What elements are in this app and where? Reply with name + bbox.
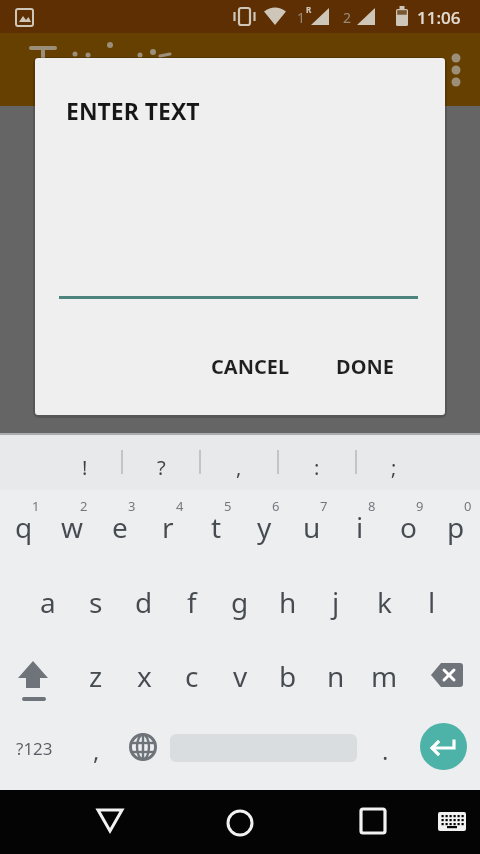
staticText: 1	[297, 8, 306, 27]
staticText: u	[303, 508, 321, 546]
staticText: t	[211, 508, 222, 546]
button[interactable]: n	[312, 639, 360, 713]
button[interactable]: r	[144, 490, 192, 564]
button[interactable]: l	[408, 565, 456, 639]
button[interactable]: w	[48, 490, 96, 564]
staticText: 4	[176, 497, 184, 515]
button[interactable]: z	[72, 639, 120, 713]
button[interactable]: q	[0, 490, 48, 564]
staticText: 3	[128, 497, 136, 515]
button[interactable]: c	[168, 639, 216, 713]
staticText: CANCEL	[211, 353, 290, 380]
staticText: y	[257, 508, 272, 546]
staticText: DONE	[336, 353, 394, 380]
button[interactable]	[420, 723, 467, 770]
staticText: p	[447, 508, 465, 546]
staticText: ,	[236, 454, 242, 481]
staticText: 2	[343, 8, 352, 27]
button[interactable]	[417, 655, 477, 729]
staticText: .	[382, 734, 389, 767]
button[interactable]: ;	[364, 439, 424, 496]
button[interactable]: y	[240, 490, 288, 564]
staticText: :	[314, 454, 320, 481]
button[interactable]: i	[336, 490, 384, 564]
staticText: k	[377, 583, 392, 621]
button[interactable]	[432, 33, 480, 81]
staticText: 7	[320, 497, 328, 515]
button[interactable]: b	[264, 639, 312, 713]
button[interactable]: ,	[209, 439, 269, 496]
button[interactable]: d	[120, 565, 168, 639]
button[interactable]: g	[216, 565, 264, 639]
staticText: z	[89, 657, 103, 695]
button[interactable]: ,	[72, 713, 120, 787]
staticText: ENTER TEXT	[66, 95, 200, 126]
button[interactable]: s	[72, 565, 120, 639]
staticText: r	[162, 508, 174, 546]
button[interactable]: t	[192, 490, 240, 564]
staticText: f	[187, 583, 197, 621]
staticText: a	[40, 583, 56, 621]
button[interactable]	[3, 655, 63, 729]
button[interactable]: h	[264, 565, 312, 639]
button[interactable]: u	[288, 490, 336, 564]
button[interactable]: ?	[131, 439, 191, 496]
staticText: w	[61, 508, 84, 546]
staticText: e	[112, 508, 128, 546]
staticText: c	[185, 657, 199, 695]
staticText: i	[356, 508, 364, 546]
button[interactable]: :	[287, 439, 347, 496]
staticText: h	[279, 583, 297, 621]
staticText: q	[15, 508, 33, 546]
staticText: d	[135, 583, 153, 621]
staticText: v	[233, 657, 248, 695]
button[interactable]: o	[384, 490, 432, 564]
staticText: x	[137, 657, 152, 695]
staticText: ;	[391, 454, 397, 481]
button[interactable]: e	[96, 490, 144, 564]
staticText: j	[332, 583, 340, 621]
staticText: g	[231, 583, 249, 621]
staticText: 8	[368, 497, 376, 515]
staticText: n	[327, 657, 345, 695]
button[interactable]	[84, 790, 136, 854]
button[interactable]: p	[432, 490, 480, 564]
button[interactable]	[426, 790, 478, 854]
staticText: 11:06	[417, 6, 461, 29]
staticText: b	[279, 657, 297, 695]
button[interactable]: !	[55, 439, 115, 496]
button[interactable]: .	[361, 713, 409, 787]
staticText: m	[371, 657, 398, 695]
button[interactable]: m	[360, 639, 408, 713]
button[interactable]	[119, 713, 167, 783]
button[interactable]: x	[120, 639, 168, 713]
staticText: 0	[464, 497, 472, 515]
button[interactable]: DONE	[315, 342, 415, 390]
staticText: l	[428, 583, 436, 621]
staticText: 1	[32, 497, 40, 515]
button[interactable]: j	[312, 565, 360, 639]
staticText: 6	[272, 497, 280, 515]
staticText: ?123	[16, 737, 53, 760]
staticText: ,	[93, 734, 100, 767]
staticText: s	[89, 583, 103, 621]
staticText: 5	[224, 497, 232, 515]
staticText: 9	[416, 497, 424, 515]
button[interactable]: f	[168, 565, 216, 639]
button[interactable]: v	[216, 639, 264, 713]
button[interactable]	[214, 790, 266, 854]
button[interactable]: k	[360, 565, 408, 639]
staticText: ?	[157, 454, 166, 481]
staticText: o	[400, 508, 417, 546]
staticText: !	[82, 454, 88, 481]
button[interactable]: ?123	[6, 711, 62, 785]
button[interactable]: a	[24, 565, 72, 639]
button[interactable]	[347, 790, 399, 854]
staticText: 2	[80, 497, 88, 515]
button[interactable]: CANCEL	[195, 342, 305, 390]
staticText: R	[306, 4, 312, 15]
